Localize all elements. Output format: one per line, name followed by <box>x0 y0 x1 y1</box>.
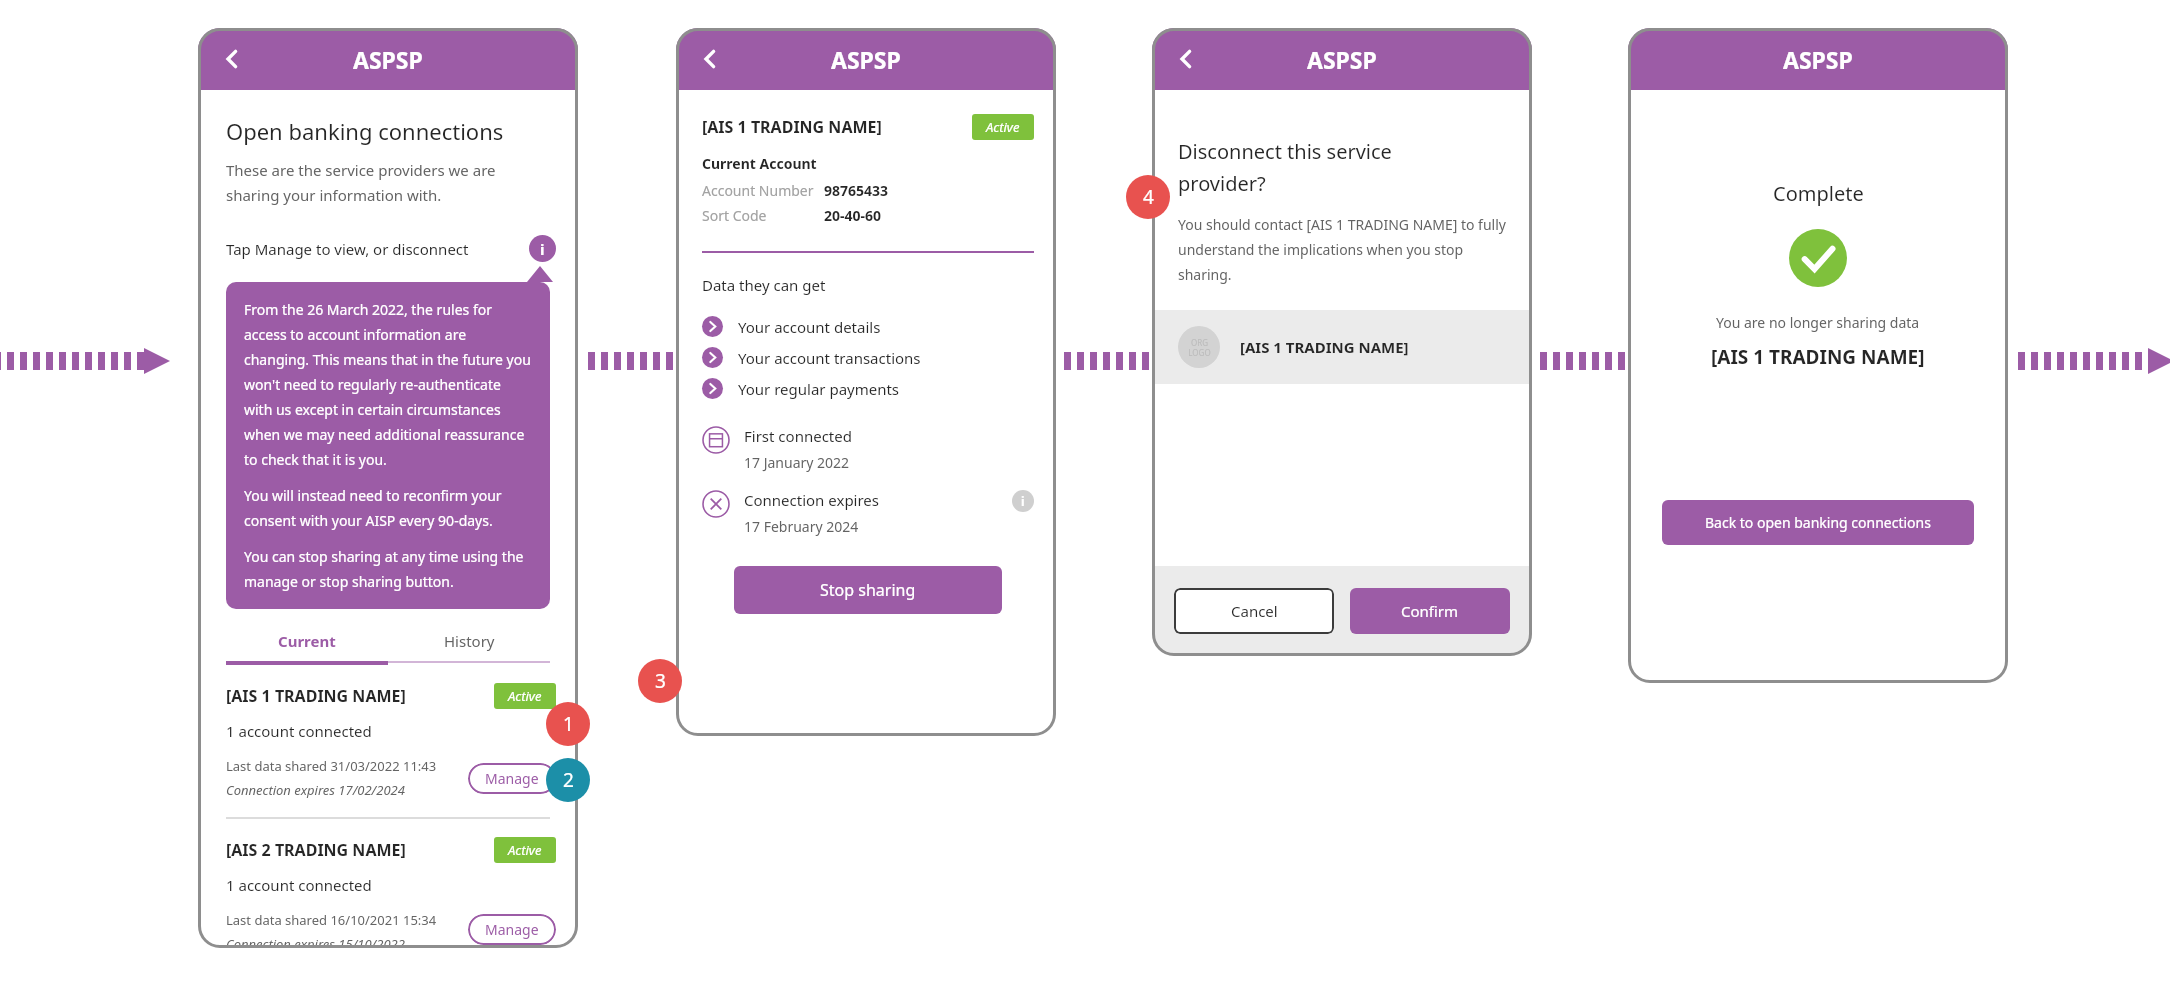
staticText: ORG LOGO <box>1188 337 1211 358</box>
staticText: Stop sharing <box>820 579 916 601</box>
button[interactable]: History <box>388 631 550 663</box>
staticText: Your account transactions <box>738 348 921 368</box>
staticText: 20-40-60 <box>824 206 882 225</box>
staticText: 1 account connected <box>226 875 372 895</box>
staticText: Your regular payments <box>738 379 900 399</box>
staticText: 2 <box>563 767 574 793</box>
staticText: Disconnect this service provider? <box>1178 138 1392 197</box>
staticText: You are no longer sharing data <box>1716 313 1920 332</box>
staticText: 3 <box>655 668 666 694</box>
staticText: Back to open banking connections <box>1705 513 1931 532</box>
staticText: ASPSP <box>1307 44 1377 75</box>
staticText: First connected <box>744 426 852 446</box>
staticText: 98765433 <box>824 181 889 200</box>
staticText: ASPSP <box>1783 44 1853 75</box>
staticText: Active <box>986 118 1020 136</box>
staticText: i <box>540 239 545 259</box>
staticText: Active <box>508 841 542 859</box>
staticText: ASPSP <box>353 44 423 75</box>
staticText: Sort Code <box>702 206 824 225</box>
staticText: i <box>1021 493 1025 509</box>
staticText: You can stop sharing at any time using t… <box>244 547 532 591</box>
staticText: Your account details <box>738 317 881 337</box>
staticText: [AIS 1 TRADING NAME] <box>702 116 882 138</box>
staticText: [AIS 1 TRADING NAME] <box>1240 337 1409 357</box>
staticText: Manage <box>485 920 539 939</box>
staticText: Data they can get <box>702 275 826 295</box>
staticText: You will instead need to reconfirm your … <box>244 486 532 530</box>
staticText: Current Account <box>702 154 817 173</box>
button[interactable]: Your account transactions <box>702 342 1034 373</box>
button[interactable]: Back <box>690 39 730 79</box>
staticText: Manage <box>485 769 539 788</box>
staticText: These are the service providers we are s… <box>226 160 496 205</box>
staticText: [AIS 2 TRADING NAME] <box>226 839 406 861</box>
button[interactable]: ORG LOGO <box>1152 310 1532 384</box>
button[interactable]: Back to open banking connections <box>1662 500 1974 545</box>
button[interactable]: Back <box>212 39 252 79</box>
button[interactable]: Confirm <box>1350 588 1510 634</box>
staticText: Complete <box>1773 180 1864 207</box>
staticText: Last data shared 31/03/2022 11:43 <box>226 757 437 775</box>
button[interactable]: Your account details <box>702 311 1034 342</box>
staticText: 4 <box>1143 184 1154 210</box>
staticText: [AIS 1 TRADING NAME] <box>1711 344 1925 370</box>
staticText: 1 account connected <box>226 721 372 741</box>
staticText: Current <box>278 631 336 651</box>
staticText: You should contact [AIS 1 TRADING NAME] … <box>1178 215 1506 284</box>
button[interactable]: Manage <box>468 914 556 945</box>
staticText: 17 February 2024 <box>744 517 859 536</box>
button[interactable]: Stop sharing <box>734 566 1002 614</box>
button[interactable]: Current <box>226 631 388 665</box>
staticText: History <box>444 631 495 651</box>
button[interactable]: Information <box>1012 490 1034 512</box>
staticText: Cancel <box>1231 601 1278 621</box>
staticText: Confirm <box>1401 601 1459 621</box>
staticText: Tap Manage to view, or disconnect <box>226 239 469 259</box>
button[interactable]: Back <box>1166 39 1206 79</box>
button[interactable]: Cancel <box>1174 588 1334 634</box>
staticText: Connection expires <box>744 490 880 510</box>
staticText: Active <box>508 687 542 705</box>
staticText: Connection expires 15/10/2022 <box>226 935 405 948</box>
staticText: Last data shared 16/10/2021 15:34 <box>226 911 437 929</box>
staticText: Account Number <box>702 181 824 200</box>
button[interactable]: Your regular payments <box>702 373 1034 404</box>
staticText: ASPSP <box>831 44 901 75</box>
staticText: [AIS 1 TRADING NAME] <box>226 685 406 707</box>
staticText: Open banking connections <box>226 116 504 146</box>
staticText: 1 <box>563 711 574 737</box>
staticText: From the 26 March 2022, the rules for ac… <box>244 300 532 469</box>
staticText: Connection expires 17/02/2024 <box>226 781 405 799</box>
button[interactable]: Information <box>529 235 556 262</box>
staticText: 17 January 2022 <box>744 453 850 472</box>
button[interactable]: Manage <box>468 763 556 794</box>
